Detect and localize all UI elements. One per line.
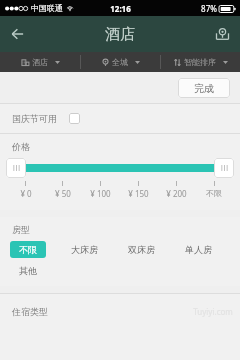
staticText: ¥ 200 xyxy=(166,188,187,199)
button[interactable]: Price handle xyxy=(6,158,26,178)
staticText: 中国联通 xyxy=(31,3,63,13)
staticText: Tuyiyi.com xyxy=(193,306,233,317)
staticText: 房型 xyxy=(12,224,30,235)
button[interactable]: 不限 xyxy=(10,241,46,258)
staticText: ¥ 100 xyxy=(90,188,111,199)
button[interactable]: 完成 xyxy=(178,78,230,98)
button[interactable]: Back xyxy=(0,16,36,52)
button[interactable]: 国庆节可用 xyxy=(0,104,240,133)
staticText: ¥ 50 xyxy=(55,188,71,199)
staticText: 不限 xyxy=(206,188,222,198)
button[interactable]: 智能排序 xyxy=(161,52,240,72)
staticText: 其他 xyxy=(19,265,37,276)
button[interactable]: Price handle xyxy=(214,158,234,178)
staticText: 酒店 xyxy=(105,25,135,44)
button[interactable]: 双床房 xyxy=(119,241,164,258)
staticText: 酒店 xyxy=(32,57,48,67)
button[interactable]: 全城 xyxy=(81,52,160,72)
staticText: 完成 xyxy=(194,82,214,95)
button[interactable]: 其他 xyxy=(10,262,46,279)
staticText: 87% xyxy=(201,3,217,14)
staticText: 12:16 xyxy=(110,3,131,14)
staticText: 大床房 xyxy=(71,244,98,255)
button[interactable]: 酒店 xyxy=(0,52,80,72)
staticText: 住宿类型 xyxy=(12,306,48,317)
staticText: 双床房 xyxy=(128,244,155,255)
staticText: 不限 xyxy=(19,244,37,255)
button[interactable]: 单人房 xyxy=(176,241,221,258)
staticText: 价格 xyxy=(12,141,30,152)
staticText: 智能排序 xyxy=(184,57,216,67)
staticText: ¥ 150 xyxy=(128,188,149,199)
button[interactable]: Map xyxy=(204,16,240,52)
staticText: 国庆节可用 xyxy=(12,113,57,124)
staticText: 单人房 xyxy=(185,244,212,255)
staticText: 全城 xyxy=(112,57,128,67)
staticText: ¥ 0 xyxy=(20,188,32,199)
button[interactable]: 大床房 xyxy=(62,241,107,258)
